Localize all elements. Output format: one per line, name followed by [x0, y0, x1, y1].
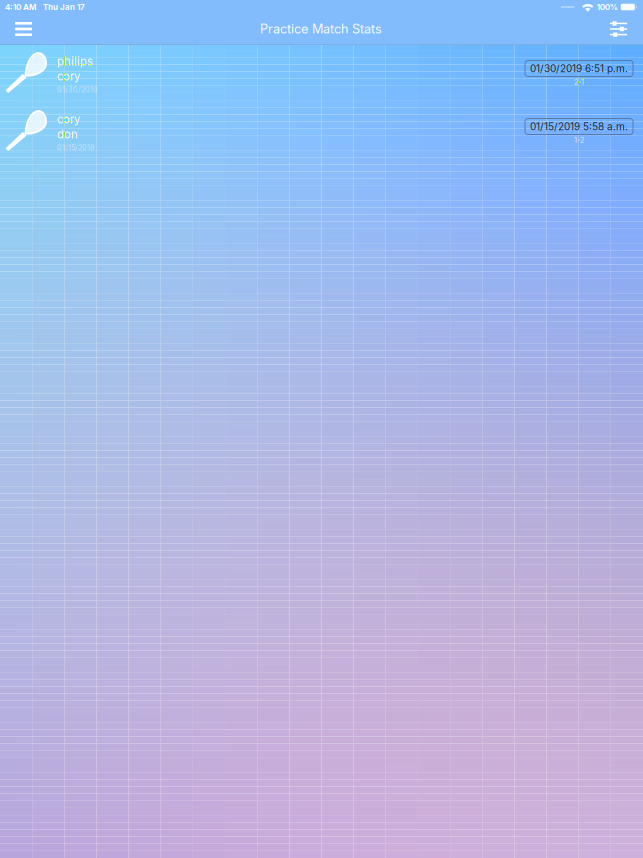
- staticText: 01/15/2019 5:58 a.m.: [530, 120, 628, 133]
- button[interactable]: philips: [0, 45, 643, 103]
- staticText: Thu Jan 17: [43, 2, 85, 12]
- staticText: cory: [57, 113, 80, 126]
- staticText: 4:10 AM: [5, 2, 36, 12]
- staticText: 100%: [597, 2, 618, 12]
- staticText: don: [57, 128, 78, 141]
- button[interactable]: cory: [0, 103, 643, 161]
- staticText: 1-2: [574, 136, 584, 144]
- staticText: cory: [57, 70, 80, 83]
- staticText: Practice Match Stats: [260, 21, 382, 37]
- button[interactable]: Filter: [600, 16, 637, 42]
- staticText: philips: [57, 55, 93, 68]
- staticText: 01/30/2019: [57, 85, 98, 94]
- staticText: 01/30/2019 6:51 p.m.: [530, 62, 628, 75]
- button[interactable]: Menu: [5, 16, 42, 42]
- staticText: 01/15/2019: [57, 143, 95, 152]
- staticText: 2-1: [574, 78, 584, 86]
